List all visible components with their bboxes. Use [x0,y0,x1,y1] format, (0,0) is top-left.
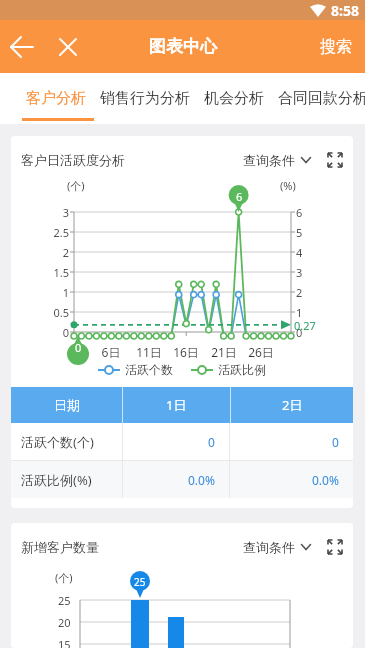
staticText: 11日 [135,344,163,360]
staticText: (%) [280,178,296,193]
staticText: 图表中心 [149,36,217,57]
button[interactable]: 合同回款分析 [278,89,365,108]
staticText: 0.5 [41,305,69,320]
staticText: 0.27 [294,318,316,333]
staticText: 16日 [172,344,200,360]
button[interactable]: 查询条件 [243,539,311,555]
staticText: 2日 [282,396,303,414]
staticText: 25 [58,593,71,608]
button[interactable] [56,35,80,59]
staticText: 25 [134,575,146,589]
staticText: 3 [296,265,303,280]
staticText: 活跃个数 [125,362,173,377]
staticText: 销售行为分析 [100,89,190,108]
staticText: 查询条件 [243,539,295,555]
staticText: 6日 [97,344,125,360]
staticText: 活跃比例 [218,362,266,377]
staticText: 0.0% [188,472,215,488]
staticText: 1 [296,305,303,320]
staticText: 合同回款分析 [278,89,365,108]
button[interactable]: 查询条件 [243,152,311,168]
staticText: 0 [75,340,82,355]
staticText: 15 [58,637,71,648]
staticText: 21日 [210,344,238,360]
staticText: 6 [296,205,303,220]
button[interactable] [327,539,343,555]
staticText: 8:58 [331,1,359,20]
staticText: 0.0% [312,472,339,488]
staticText: 2 [296,285,303,300]
staticText: 新增客户数量 [21,539,99,555]
staticText: 0 [296,325,303,340]
staticText: 1日 [166,396,187,414]
staticText: 日期 [54,397,80,413]
staticText: 20 [58,615,71,630]
staticText: 2.5 [41,225,69,240]
staticText: 客户日活跃度分析 [21,152,125,168]
staticText: 4 [296,245,303,260]
staticText: 客户分析 [26,89,86,108]
button[interactable]: 搜索 [320,37,365,57]
button[interactable]: 销售行为分析 [100,89,190,108]
staticText: 查询条件 [243,152,295,168]
staticText: 搜索 [320,37,352,57]
button[interactable]: 机会分析 [204,89,264,108]
staticText: 活跃比例(%) [21,471,92,489]
staticText: 6 [236,189,243,204]
staticText: 0 [41,325,69,340]
button[interactable]: 客户分析 [26,89,86,108]
staticText: (个) [55,570,73,585]
staticText: 0 [208,434,215,450]
staticText: 0 [332,434,339,450]
staticText: 活跃个数(个) [21,433,94,451]
staticText: 机会分析 [204,89,264,108]
staticText: (个) [67,178,85,193]
staticText: 1 [41,285,69,300]
staticText: 1.5 [41,265,69,280]
staticText: 5 [296,225,303,240]
button[interactable] [8,32,38,62]
staticText: 2 [41,245,69,260]
staticText: 26日 [247,344,275,360]
button[interactable] [327,152,343,168]
staticText: 3 [41,205,69,220]
